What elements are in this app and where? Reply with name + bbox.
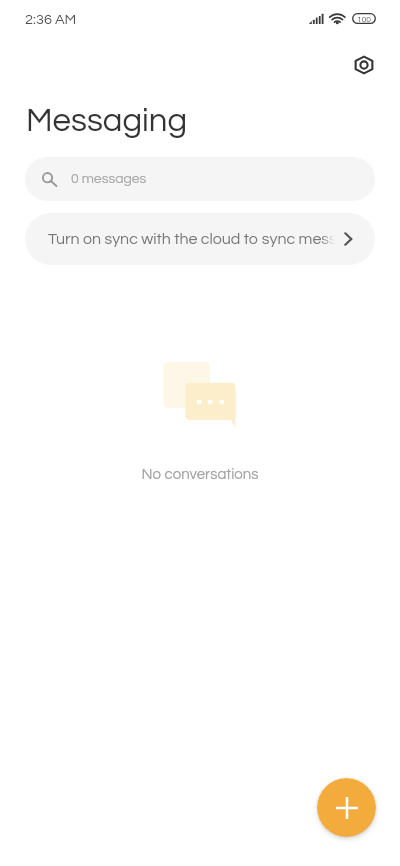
staticText: No conversations xyxy=(0,467,400,482)
staticText: 2:36 AM xyxy=(25,12,77,27)
button[interactable]: 0 messages xyxy=(25,157,375,201)
staticText: Messaging xyxy=(26,104,188,138)
staticText: 0 messages xyxy=(71,172,147,186)
button[interactable]: Turn on sync with the cloud to sync mess… xyxy=(25,213,375,265)
button[interactable]: New conversation xyxy=(317,778,376,837)
button[interactable]: Settings xyxy=(344,45,383,84)
staticText: Turn on sync with the cloud to sync mess… xyxy=(48,231,335,247)
staticText: 100 xyxy=(357,15,372,24)
